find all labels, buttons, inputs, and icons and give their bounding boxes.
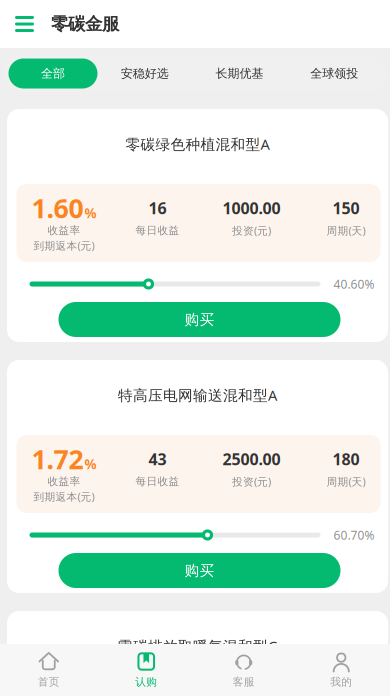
staticText: 周期(天) <box>326 223 365 238</box>
staticText: 长期优基 <box>215 66 263 81</box>
staticText: 16 <box>148 197 166 219</box>
staticText: 特高压电网输送混和型A <box>118 385 277 405</box>
staticText: 投资(元) <box>232 474 271 489</box>
button[interactable]: 购买 <box>58 302 340 337</box>
staticText: 全球领投 <box>310 66 358 81</box>
staticText: 1000.00 <box>222 197 280 219</box>
staticText: 安稳好选 <box>121 66 169 81</box>
staticText: 我的 <box>330 675 352 688</box>
staticText: 60.70% <box>333 527 374 543</box>
button[interactable]: 客服 <box>195 645 292 695</box>
staticText: 到期返本(元) <box>33 238 94 253</box>
staticText: 零碳绿色种植混和型A <box>125 134 269 154</box>
staticText: 零碳排放取暖气混和型C <box>118 636 277 656</box>
staticText: 周期(天) <box>326 474 365 489</box>
staticText: 每日收益 <box>135 224 179 237</box>
staticText: 首页 <box>38 675 60 688</box>
staticText: 购买 <box>184 561 214 579</box>
staticText: 购买 <box>184 310 214 328</box>
staticText: % <box>84 204 96 222</box>
staticText: 43 <box>148 448 166 470</box>
staticText: 全部 <box>41 66 65 81</box>
staticText: 零碳金服 <box>51 13 119 35</box>
button[interactable]: 首页 <box>0 645 97 695</box>
staticText: 40.60% <box>333 276 374 292</box>
staticText: 收益率 <box>47 475 80 488</box>
staticText: 认购 <box>135 675 157 688</box>
staticText: 每日收益 <box>135 475 179 488</box>
button[interactable]: 长期优基 <box>192 58 287 88</box>
button[interactable]: Menu <box>10 11 39 37</box>
button[interactable]: 全球领投 <box>287 58 381 88</box>
button[interactable]: 认购 <box>97 645 195 695</box>
staticText: 2500.00 <box>222 448 280 470</box>
button[interactable]: 我的 <box>292 645 390 695</box>
staticText: 150 <box>332 197 359 219</box>
staticText: 客服 <box>233 675 255 688</box>
button[interactable]: 购买 <box>58 553 340 588</box>
button[interactable]: 安稳好选 <box>97 58 192 88</box>
staticText: 收益率 <box>47 224 80 237</box>
staticText: 180 <box>332 448 359 470</box>
button[interactable]: 全部 <box>8 58 97 88</box>
staticText: % <box>84 455 96 473</box>
staticText: 投资(元) <box>232 223 271 238</box>
staticText: 1.60 <box>31 190 83 226</box>
staticText: 到期返本(元) <box>33 489 94 504</box>
staticText: 1.72 <box>31 441 83 477</box>
